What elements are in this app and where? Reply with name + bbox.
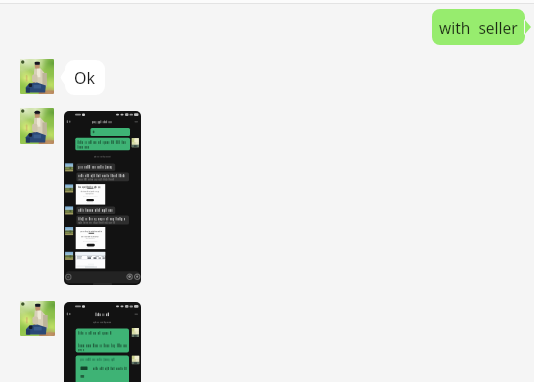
button[interactable]: Ok xyxy=(61,60,105,95)
button[interactable]: Contact profile photo xyxy=(20,108,54,144)
button[interactable]: Contact profile photo xyxy=(20,59,54,94)
staticText: Ok xyxy=(74,67,96,89)
button[interactable]: with seller xyxy=(432,9,531,45)
staticText: with seller xyxy=(439,17,518,38)
button[interactable]: Contact profile photo xyxy=(20,301,55,336)
button[interactable] xyxy=(64,302,141,382)
button[interactable] xyxy=(64,111,141,285)
